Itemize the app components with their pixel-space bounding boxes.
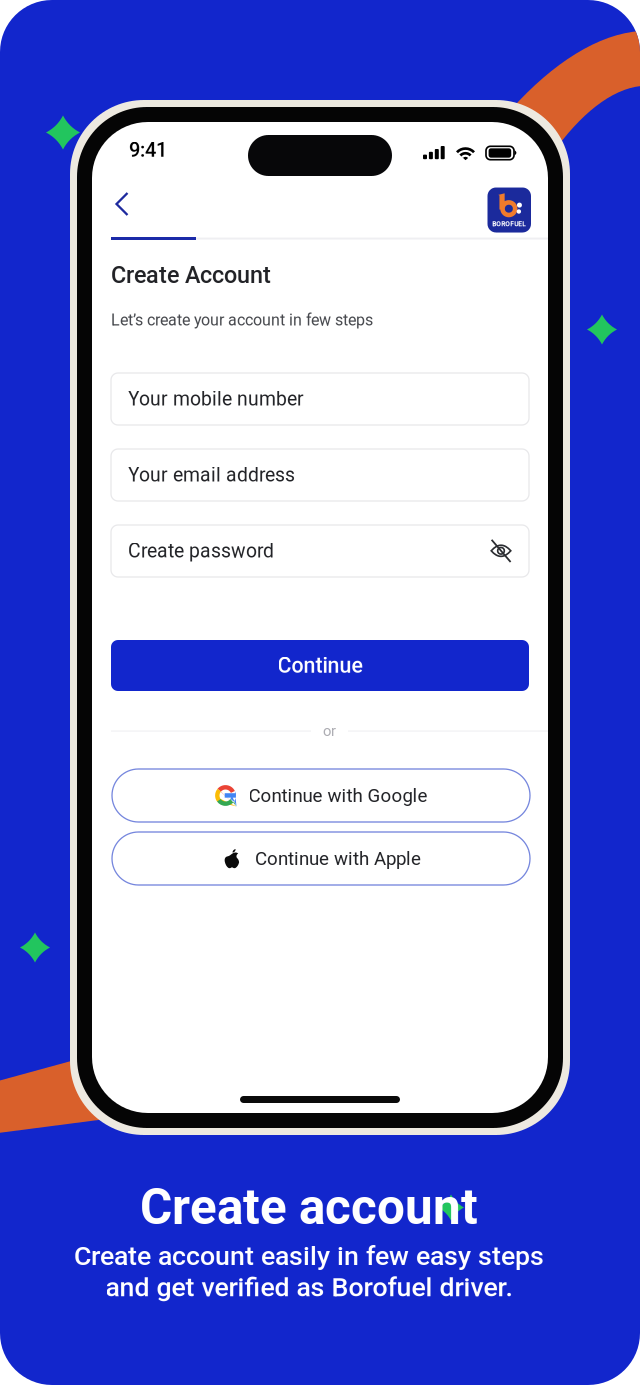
staticText: BOROFUEL (492, 220, 526, 228)
staticText: Your email address (128, 464, 295, 486)
button[interactable]: Continue (111, 640, 529, 691)
staticText: Create account easily in few easy steps (74, 1240, 544, 1271)
button[interactable]: Create password (111, 525, 529, 577)
staticText: Let’s create your account in few steps (111, 311, 373, 329)
staticText: Continue (277, 653, 362, 678)
staticText: Create Account (111, 261, 271, 289)
staticText: or (323, 722, 336, 740)
button[interactable]: Continue with Google (112, 769, 530, 822)
staticText: Your mobile number (128, 388, 304, 410)
staticText: Create account (140, 1178, 478, 1236)
button[interactable]: Your mobile number (111, 373, 529, 425)
button[interactable]: Borofuel home (487, 187, 531, 232)
staticText: 9:41 (129, 138, 167, 162)
button[interactable]: Your email address (111, 449, 529, 501)
staticText: and get verified as Borofuel driver. (105, 1271, 512, 1303)
button[interactable]: Back (101, 183, 143, 225)
staticText: Continue with Apple (255, 848, 421, 869)
button[interactable]: Continue with Apple (112, 832, 530, 885)
staticText: Continue with Google (248, 785, 427, 806)
staticText: Create password (128, 540, 274, 562)
